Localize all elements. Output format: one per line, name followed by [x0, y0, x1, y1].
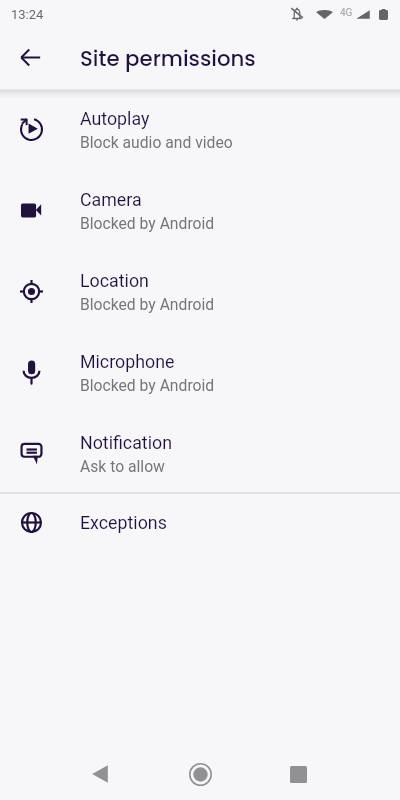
button[interactable]: Navigate up: [13, 40, 47, 74]
staticText: 13:24: [11, 7, 44, 22]
staticText: Camera: [80, 189, 142, 210]
staticText: Blocked by Android: [80, 376, 215, 394]
staticText: Autoplay: [80, 108, 150, 129]
staticText: 4G: [340, 7, 353, 19]
button[interactable]: Home: [188, 762, 212, 786]
staticText: Exceptions: [80, 512, 167, 533]
staticText: Notification: [80, 432, 172, 453]
button[interactable]: Back: [88, 762, 112, 786]
staticText: Blocked by Android: [80, 214, 215, 232]
button[interactable]: Location: [0, 251, 400, 332]
staticText: Location: [80, 270, 149, 291]
button[interactable]: Recent apps: [286, 762, 310, 786]
staticText: Site permissions: [80, 44, 256, 74]
button[interactable]: Autoplay: [0, 89, 400, 170]
button[interactable]: Exceptions: [0, 494, 400, 551]
button[interactable]: Microphone: [0, 332, 400, 413]
staticText: Blocked by Android: [80, 295, 215, 313]
button[interactable]: Notification: [0, 413, 400, 494]
button[interactable]: Camera: [0, 170, 400, 251]
staticText: Microphone: [80, 351, 175, 372]
staticText: Block audio and video: [80, 133, 233, 151]
staticText: Ask to allow: [80, 457, 165, 475]
